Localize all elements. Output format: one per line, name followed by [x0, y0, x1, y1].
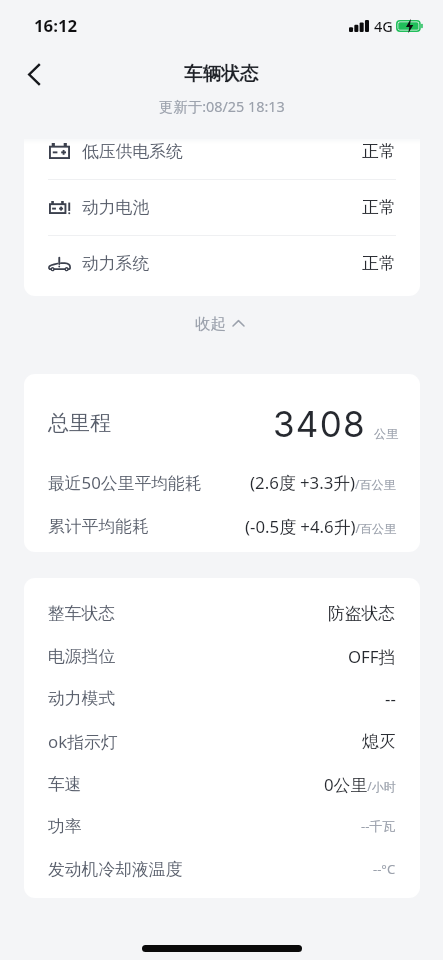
staticText: OFF挡: [348, 645, 396, 668]
staticText: --°C: [373, 860, 396, 878]
staticText: 低压供电系统: [82, 141, 183, 162]
staticText: 电源挡位: [48, 646, 116, 667]
button[interactable]: 整车状态: [24, 596, 420, 630]
button[interactable]: 动力系统: [24, 235, 420, 291]
staticText: 动力系统: [82, 253, 150, 274]
button[interactable]: Back: [14, 54, 54, 94]
staticText: ok指示灯: [48, 730, 118, 753]
staticText: 车辆状态: [184, 62, 259, 85]
staticText: (2.6度 +3.3升)/百公里: [250, 471, 396, 494]
staticText: 整车状态: [48, 603, 116, 624]
staticText: 0公里/小时: [324, 773, 396, 796]
button[interactable]: ok指示灯: [24, 724, 420, 758]
button[interactable]: 功率: [24, 809, 420, 843]
staticText: 更新于:08/25 18:13: [159, 97, 285, 117]
staticText: 最近50公里平均能耗: [48, 471, 202, 494]
staticText: 16:12: [34, 14, 78, 37]
staticText: 3408: [273, 403, 366, 445]
staticText: 动力电池: [82, 197, 150, 218]
button[interactable]: 车速: [24, 767, 420, 801]
staticText: 4G: [374, 16, 393, 36]
staticText: 功率: [48, 816, 82, 837]
button[interactable]: 电源挡位: [24, 639, 420, 673]
staticText: 熄灭: [362, 731, 396, 752]
staticText: 收起: [195, 314, 226, 334]
staticText: --: [385, 687, 396, 710]
staticText: 总里程: [48, 410, 111, 436]
staticText: (-0.5度 +4.6升)/百公里: [245, 515, 396, 538]
staticText: --千瓦: [361, 817, 396, 835]
staticText: 防盗状态: [328, 603, 396, 624]
staticText: 动力模式: [48, 688, 116, 709]
staticText: 发动机冷却液温度: [48, 859, 183, 880]
staticText: 公里: [374, 426, 398, 441]
staticText: 正常: [362, 141, 396, 162]
staticText: 正常: [362, 197, 396, 218]
staticText: 正常: [362, 253, 396, 274]
staticText: 车速: [48, 774, 82, 795]
button[interactable]: 动力电池: [24, 179, 420, 235]
button[interactable]: 收起: [167, 305, 271, 343]
staticText: 累计平均能耗: [48, 516, 149, 537]
button[interactable]: 动力模式: [24, 681, 420, 715]
button[interactable]: 低压供电系统: [24, 123, 420, 179]
button[interactable]: 发动机冷却液温度: [24, 852, 420, 886]
